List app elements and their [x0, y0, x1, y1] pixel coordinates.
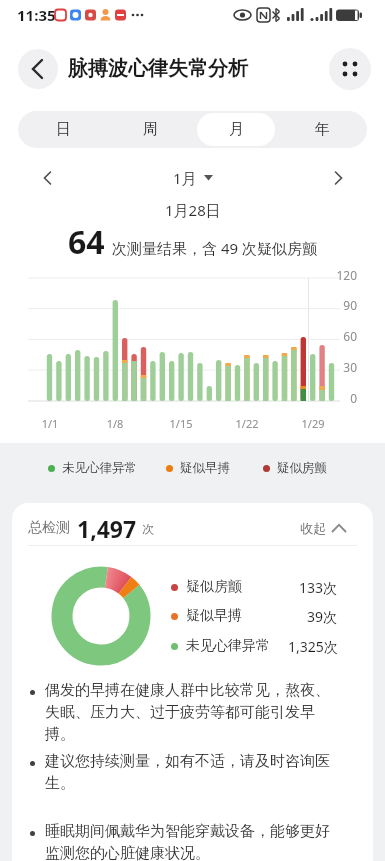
staticText: 日 — [56, 120, 71, 139]
button[interactable] — [324, 163, 354, 193]
button[interactable] — [329, 48, 371, 90]
staticText: 偶发的早搏在健康人群中比较常见，熬夜、 失眠、压力大、过于疲劳等都可能引发早 搏… — [45, 681, 330, 744]
button[interactable]: 收起 — [300, 515, 346, 541]
staticText: 1,325次 — [288, 637, 338, 656]
staticText: 60 — [317, 328, 357, 344]
staticText: 月 — [229, 120, 244, 139]
staticText: 39次 — [307, 607, 338, 626]
staticText: 1/8 — [95, 416, 135, 431]
button[interactable]: 周 — [111, 113, 189, 146]
staticText: 0 — [317, 390, 357, 406]
button[interactable]: 日 — [24, 113, 103, 146]
staticText: 1月28日 — [165, 200, 221, 220]
staticText: 1/29 — [293, 416, 333, 431]
staticText: 120 — [317, 267, 357, 283]
staticText: 1/1 — [30, 416, 70, 431]
button[interactable]: 1月 — [0, 163, 385, 193]
staticText: 次 — [142, 521, 154, 536]
staticText: 建议您持续测量，如有不适，请及时咨询医 生。 — [45, 752, 330, 793]
staticText: 疑似房颤 — [277, 460, 327, 476]
staticText: 周 — [143, 120, 158, 139]
staticText: 睡眠期间佩戴华为智能穿戴设备，能够更好 监测您的心脏健康状况。 — [45, 822, 330, 861]
staticText: 30 — [317, 359, 357, 375]
button[interactable]: 月 — [197, 113, 275, 146]
staticText: 脉搏波心律失常分析 — [68, 56, 248, 81]
staticText: 未见心律异常 — [62, 460, 137, 476]
staticText: 1/15 — [161, 416, 201, 431]
staticText: 64 — [68, 220, 105, 264]
staticText: 疑似早搏 — [186, 607, 242, 625]
staticText: 11:35 — [17, 5, 56, 25]
button[interactable] — [32, 163, 62, 193]
staticText: 1月 — [173, 168, 197, 188]
staticText: 收起 — [300, 520, 326, 536]
staticText: 总检测 — [28, 519, 70, 537]
button[interactable]: 年 — [283, 113, 361, 146]
staticText: 133次 — [299, 578, 338, 597]
staticText: 未见心律异常 — [186, 637, 270, 655]
staticText: 1,497 — [77, 513, 137, 544]
staticText: 次测量结果，含 49 次疑似房颤 — [112, 238, 317, 258]
staticText: 疑似房颤 — [186, 578, 242, 596]
button[interactable] — [18, 49, 58, 89]
staticText: 90 — [317, 297, 357, 313]
staticText: 1/22 — [227, 416, 267, 431]
staticText: 年 — [315, 120, 330, 139]
staticText: 疑似早搏 — [180, 460, 230, 476]
